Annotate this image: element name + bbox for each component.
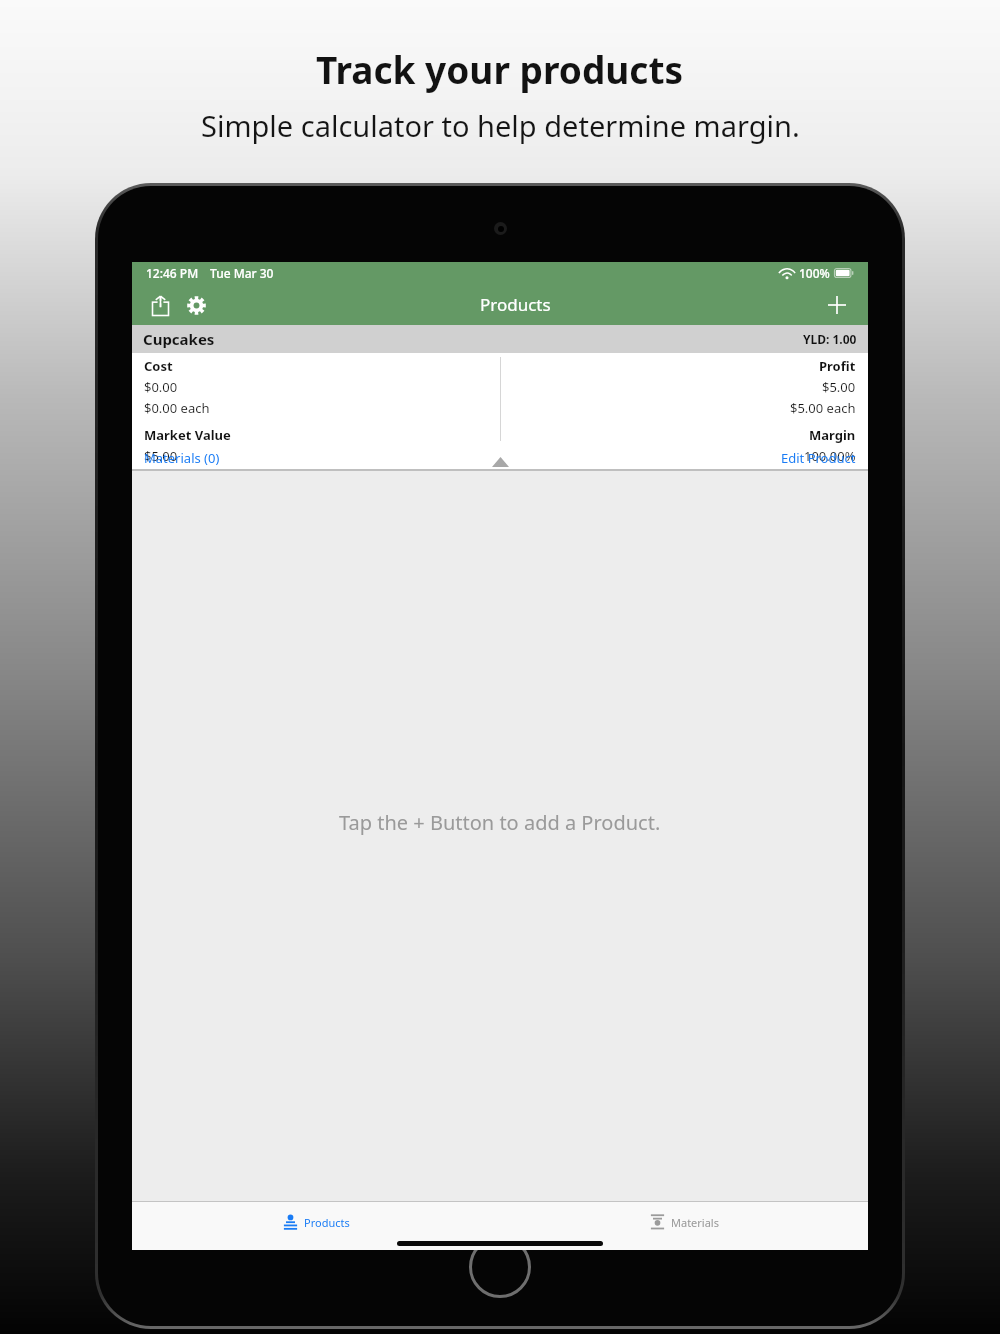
staticText: YLD: 1.00	[803, 331, 857, 347]
staticText: Market Value	[144, 426, 231, 444]
staticText: Tap the + Button to add a Product.	[339, 809, 661, 836]
staticText: Products	[304, 1215, 350, 1230]
staticText: 100%	[799, 265, 830, 281]
staticText: 100.00%	[804, 447, 856, 465]
staticText: Products	[480, 293, 551, 316]
button[interactable]: Edit Product	[781, 449, 856, 467]
staticText: Edit Product	[781, 449, 856, 467]
button[interactable]: Materials (0)	[144, 449, 220, 467]
button[interactable]: Cost	[132, 353, 868, 469]
staticText: Cupcakes	[143, 329, 215, 349]
staticText: Track your products	[316, 44, 684, 94]
button[interactable]: Materials	[500, 1202, 868, 1250]
staticText: 12:46 PM	[146, 265, 199, 281]
staticText: Tue Mar 30	[210, 265, 274, 281]
button[interactable]: Settings	[178, 287, 214, 323]
staticText: $5.00	[822, 378, 856, 396]
staticText: $5.00 each	[790, 399, 856, 417]
staticText: $5.00	[144, 447, 178, 465]
staticText: Margin	[809, 426, 856, 444]
staticText: $0.00 each	[144, 399, 210, 417]
button[interactable]: Add Product	[818, 286, 856, 324]
staticText: Materials (0)	[144, 449, 220, 467]
staticText: Materials	[671, 1215, 719, 1230]
staticText: $0.00	[144, 378, 178, 396]
staticText: Profit	[819, 357, 856, 375]
button[interactable]: Products	[132, 1202, 500, 1250]
staticText: Cost	[144, 357, 173, 375]
button[interactable]: Share	[142, 287, 178, 323]
staticText: Simple calculator to help determine marg…	[201, 106, 800, 145]
